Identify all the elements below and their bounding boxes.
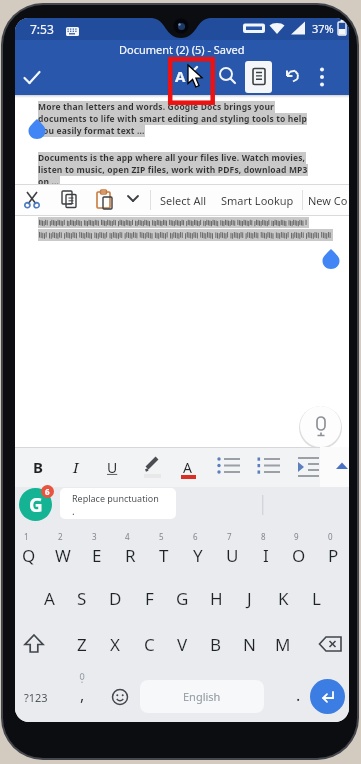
button[interactable]: U xyxy=(99,451,125,483)
staticText: 0 xyxy=(328,531,333,542)
button[interactable]: , xyxy=(71,678,93,712)
staticText: 4 xyxy=(125,531,130,542)
button[interactable]: X xyxy=(99,624,131,664)
button[interactable]: V xyxy=(166,624,198,664)
button[interactable]: S xyxy=(66,578,98,618)
button[interactable]: W xyxy=(47,535,79,575)
button[interactable]: Smart Lookup xyxy=(215,184,299,216)
staticText: 2 xyxy=(58,531,63,542)
staticText: H xyxy=(210,587,223,610)
button[interactable]: B xyxy=(200,624,232,664)
button[interactable]: J xyxy=(233,578,265,618)
button[interactable]: A xyxy=(33,578,65,618)
button[interactable] xyxy=(108,686,132,710)
button[interactable]: Select All xyxy=(153,184,213,216)
button[interactable] xyxy=(317,633,345,657)
button[interactable] xyxy=(95,189,115,211)
button[interactable] xyxy=(139,453,167,481)
button[interactable]: C xyxy=(133,624,165,664)
button[interactable]: Y xyxy=(182,535,214,575)
button[interactable]: E xyxy=(81,535,113,575)
button[interactable]: T xyxy=(148,535,180,575)
staticText: I xyxy=(263,544,269,567)
button[interactable]: B xyxy=(25,451,51,483)
staticText: B xyxy=(210,633,222,656)
staticText: Smart Lookup xyxy=(221,193,294,208)
staticText: 8 xyxy=(261,531,266,542)
staticText: M xyxy=(275,633,291,656)
staticText: Document (2) (5) - Saved xyxy=(119,42,245,57)
staticText: E xyxy=(92,544,102,567)
button[interactable]: New Co xyxy=(306,184,349,216)
button[interactable]: A xyxy=(177,451,203,483)
staticText: . xyxy=(72,504,75,518)
staticText: V xyxy=(177,633,188,656)
staticText: , xyxy=(80,684,85,706)
button[interactable] xyxy=(218,66,238,86)
staticText: More than letters and words. Google Docs… xyxy=(38,101,275,113)
staticText: A xyxy=(183,458,192,477)
button[interactable]: L xyxy=(300,578,332,618)
button[interactable]: K xyxy=(267,578,299,618)
staticText: O xyxy=(292,544,306,567)
button[interactable]: Q xyxy=(15,535,45,575)
button[interactable]: P xyxy=(317,535,349,575)
button[interactable]: I xyxy=(63,451,89,483)
staticText: F xyxy=(145,587,154,610)
button[interactable]: ?123 xyxy=(19,680,53,714)
button[interactable] xyxy=(215,453,245,481)
staticText: New Co xyxy=(308,193,348,208)
button[interactable] xyxy=(282,66,302,86)
staticText: N xyxy=(243,633,256,656)
staticText: Select All xyxy=(160,193,207,208)
button[interactable]: N xyxy=(233,624,265,664)
staticText: B xyxy=(33,457,43,477)
button[interactable] xyxy=(23,190,43,210)
staticText: documents to life with smart editing and… xyxy=(38,113,307,125)
staticText: Y xyxy=(193,544,203,567)
button[interactable]: English xyxy=(140,680,264,713)
button[interactable] xyxy=(310,679,345,714)
staticText: Q xyxy=(22,544,36,567)
button[interactable] xyxy=(23,68,41,86)
staticText: G xyxy=(29,492,43,518)
button[interactable] xyxy=(21,632,47,658)
button[interactable] xyxy=(315,66,329,88)
button[interactable]: R xyxy=(114,535,146,575)
button[interactable]: G xyxy=(166,578,198,618)
staticText: D xyxy=(109,587,122,610)
staticText: on ... xyxy=(38,176,60,188)
staticText: X xyxy=(110,633,120,656)
staticText: K xyxy=(278,587,289,610)
staticText: English xyxy=(183,689,221,704)
staticText: U xyxy=(107,458,118,477)
button[interactable] xyxy=(59,189,81,211)
staticText: Documents is the app where all your file… xyxy=(38,152,306,164)
button[interactable]: M xyxy=(267,624,299,664)
button[interactable]: H xyxy=(200,578,232,618)
staticText: A xyxy=(44,587,55,610)
staticText: 7 xyxy=(227,531,232,542)
button[interactable] xyxy=(255,453,285,481)
button[interactable]: U xyxy=(216,535,248,575)
button[interactable] xyxy=(295,453,323,481)
button[interactable] xyxy=(332,459,349,475)
button[interactable] xyxy=(125,192,141,206)
button[interactable]: O xyxy=(283,535,315,575)
staticText: G xyxy=(176,587,189,610)
button[interactable]: Z xyxy=(66,624,98,664)
staticText: 6 xyxy=(193,531,198,542)
button[interactable]: G xyxy=(19,488,52,521)
button[interactable] xyxy=(245,61,272,93)
staticText: C xyxy=(144,633,155,656)
staticText: L xyxy=(312,587,321,610)
button[interactable]: Replace punctuation xyxy=(60,488,176,519)
button[interactable]: D xyxy=(99,578,131,618)
staticText: J xyxy=(247,587,252,610)
button[interactable] xyxy=(300,406,341,447)
staticText: U xyxy=(226,544,239,567)
staticText: 1 xyxy=(24,531,29,542)
button[interactable]: . xyxy=(287,678,309,712)
button[interactable]: F xyxy=(133,578,165,618)
button[interactable]: I xyxy=(250,535,282,575)
